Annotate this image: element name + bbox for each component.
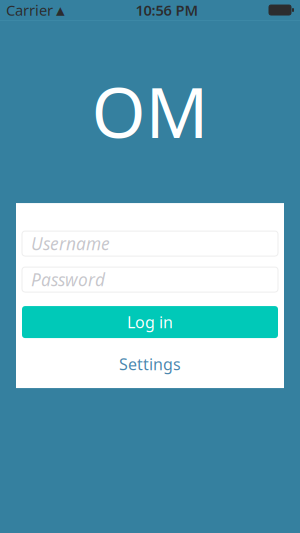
staticText: 10:56 PM [135, 0, 198, 20]
staticText: ▴ [56, 0, 65, 20]
button[interactable]: Log in [22, 306, 278, 338]
staticText: Username [31, 232, 110, 255]
staticText: Password [31, 268, 105, 291]
staticText: Log in [127, 311, 173, 333]
button[interactable]: Settings [22, 354, 278, 374]
staticText: Carrier [6, 0, 53, 20]
staticText: Settings [119, 353, 181, 375]
staticText: OM [91, 65, 208, 157]
